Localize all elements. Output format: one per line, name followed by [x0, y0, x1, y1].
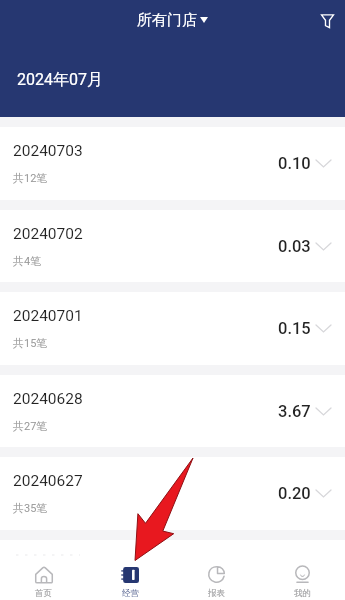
staticText: 经营	[122, 588, 139, 599]
button[interactable]: 所有门店	[131, 5, 214, 36]
staticText: 首页	[35, 588, 52, 599]
staticText: 我的	[294, 588, 311, 599]
button[interactable]: 我的	[259, 566, 345, 599]
button[interactable]: 报表	[173, 566, 259, 599]
staticText: 20240627	[13, 472, 83, 490]
staticText: 20240702	[13, 225, 83, 243]
button[interactable]: 20240627	[0, 457, 345, 530]
staticText: 共27笔	[13, 419, 48, 433]
staticText: 0.10	[278, 154, 311, 173]
staticText: 共4笔	[13, 254, 42, 268]
staticText: 报表	[208, 588, 225, 599]
button[interactable]: Filter	[315, 9, 339, 33]
staticText: 共12笔	[13, 171, 48, 185]
staticText: 0.15	[278, 319, 311, 338]
staticText: 0.03	[278, 237, 311, 256]
button[interactable]: 首页	[0, 566, 87, 599]
button[interactable]: 20240703	[0, 127, 345, 200]
staticText: 共15笔	[13, 336, 48, 350]
staticText: 共35笔	[13, 501, 48, 515]
staticText: 0.20	[278, 484, 311, 503]
button[interactable]: 20240701	[0, 292, 345, 365]
staticText: 2024年07月	[17, 70, 103, 90]
button[interactable]: 经营	[87, 566, 173, 599]
staticText: 20240628	[13, 390, 83, 408]
button[interactable]: 20240702	[0, 210, 345, 282]
staticText: 所有门店	[137, 11, 197, 30]
staticText: 20240703	[13, 142, 83, 160]
staticText: 20240701	[13, 307, 83, 325]
staticText: 3.67	[278, 402, 311, 421]
button[interactable]: 20240628	[0, 375, 345, 447]
